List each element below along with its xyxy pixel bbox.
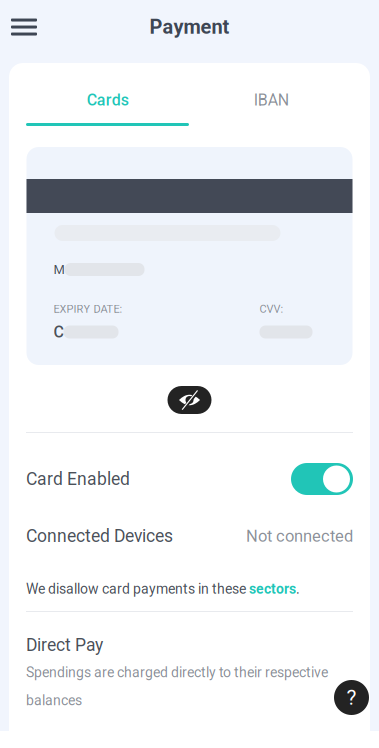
- button[interactable]: sectors: [249, 581, 296, 597]
- staticText: Payment: [149, 15, 229, 39]
- button[interactable]: IBAN: [189, 63, 353, 123]
- staticText: We disallow card payments in these: [26, 581, 249, 597]
- staticText: Card Enabled: [26, 469, 130, 489]
- staticText: M: [53, 262, 64, 277]
- staticText: IBAN: [254, 91, 289, 109]
- button[interactable]: Menu: [2, 5, 46, 49]
- staticText: Not connected: [246, 526, 353, 546]
- staticText: Direct Pay: [26, 635, 103, 655]
- staticText: CVV:: [259, 303, 283, 315]
- staticText: .: [296, 581, 300, 597]
- staticText: Spendings are charged directly to their …: [26, 664, 328, 681]
- staticText: EXPIRY DATE:: [53, 303, 122, 315]
- staticText: C: [53, 323, 63, 341]
- button[interactable]: Cards: [26, 63, 189, 123]
- staticText: balances: [26, 692, 82, 709]
- staticText: ?: [346, 685, 356, 710]
- button[interactable]: Help: [334, 680, 369, 715]
- button[interactable]: Card Enabled: [291, 463, 353, 495]
- button[interactable]: Hide card details: [167, 386, 211, 414]
- staticText: sectors: [249, 581, 296, 597]
- staticText: Connected Devices: [26, 526, 173, 546]
- staticText: Cards: [87, 91, 129, 109]
